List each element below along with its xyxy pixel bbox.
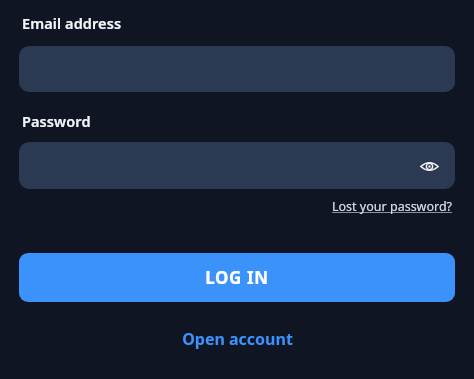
button[interactable]: Open account — [174, 324, 301, 354]
button[interactable]: Lost your password? — [330, 197, 455, 216]
staticText: Password — [22, 111, 91, 131]
staticText: Email address — [22, 13, 122, 33]
button[interactable]: LOG IN — [19, 253, 455, 302]
staticText: Open account — [182, 328, 293, 350]
button[interactable]: Show password — [19, 142, 455, 189]
staticText: LOG IN — [205, 266, 269, 289]
button[interactable]: Show password — [412, 149, 446, 183]
staticText: Lost your password? — [332, 198, 453, 215]
